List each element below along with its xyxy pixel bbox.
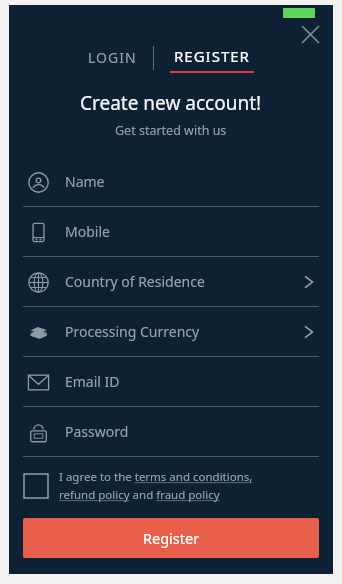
button[interactable]: Name <box>23 157 319 207</box>
staticText: refund policy and fraud policy <box>59 487 220 503</box>
staticText: REGISTER <box>174 46 250 66</box>
button[interactable]: Processing Currency <box>23 307 319 357</box>
staticText: Mobile <box>65 222 110 241</box>
button[interactable]: LOGIN <box>72 44 153 71</box>
button[interactable]: Mobile <box>23 207 319 257</box>
staticText: Register <box>143 528 200 548</box>
button[interactable]: Country of Residence <box>23 257 319 307</box>
staticText: I agree to the terms and conditions, <box>59 469 253 485</box>
staticText: Password <box>65 422 129 441</box>
staticText: Create new account! <box>80 90 262 116</box>
button[interactable]: REGISTER <box>154 42 270 73</box>
button[interactable]: Password <box>23 407 319 457</box>
staticText: Email ID <box>65 372 120 391</box>
button[interactable]: I agree to the terms and conditions, <box>9 467 333 505</box>
button[interactable]: Email ID <box>23 357 319 407</box>
staticText: LOGIN <box>88 48 137 67</box>
staticText: Processing Currency <box>65 322 200 341</box>
button[interactable]: Close <box>294 18 326 50</box>
staticText: Name <box>65 172 105 191</box>
button[interactable]: Register <box>23 518 319 558</box>
staticText: Country of Residence <box>65 272 205 291</box>
staticText: Get started with us <box>115 122 227 139</box>
